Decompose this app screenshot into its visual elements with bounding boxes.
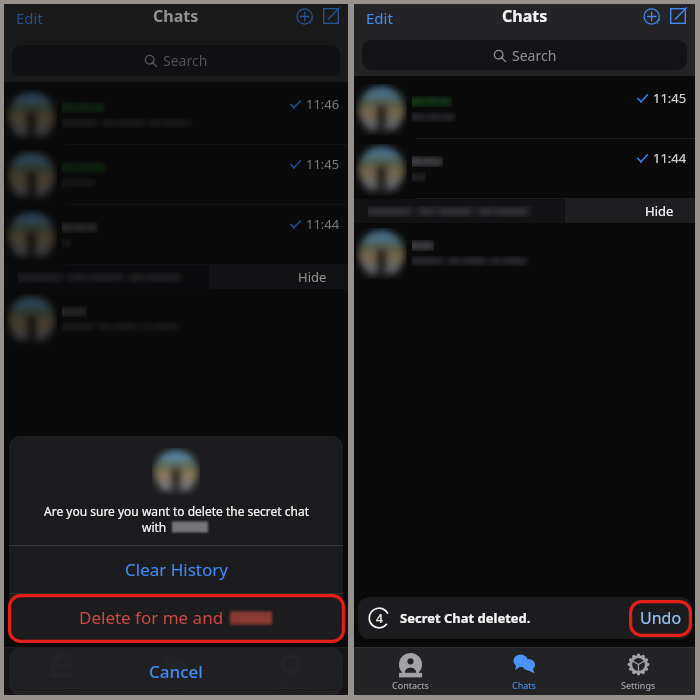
staticText: 4 [376,610,383,626]
button[interactable]: Cancel [9,648,343,695]
staticText: 11:46 [306,95,340,113]
button[interactable] [4,289,348,349]
staticText: Search [512,46,557,65]
staticText: Hide [645,202,674,220]
staticText: Contacts [392,679,429,691]
staticText: 11:45 [306,155,340,173]
staticText: Cancel [149,660,203,683]
button[interactable]: Search [362,40,687,70]
staticText: Hide [298,268,327,286]
staticText: Delete for me and [79,606,228,629]
staticText: 11:44 [653,149,687,167]
button[interactable]: Undo [632,601,690,635]
staticText: Chats [502,5,548,27]
button[interactable]: Delete for me and [9,594,343,641]
button[interactable]: 11:45 [354,79,695,139]
button[interactable]: Hide [276,265,348,289]
staticText: Edit [16,8,43,24]
staticText: Search [163,51,208,70]
button[interactable]: 11:46 [4,85,348,145]
button[interactable]: Hide [623,199,695,223]
staticText: with [142,519,170,535]
staticText: Are you sure you want to delete the secr… [44,503,309,519]
staticText: Edit [366,8,393,24]
button[interactable]: Add contact [293,4,317,28]
button[interactable]: Contacts [354,648,467,695]
staticText: 11:45 [653,89,687,107]
button[interactable]: Settings [581,648,695,695]
button[interactable]: 11:44 [4,205,348,265]
staticText: Settings [621,679,656,691]
button[interactable]: Compose message [319,4,343,28]
staticText: 11:44 [306,215,340,233]
staticText: Undo [640,607,682,629]
staticText: Chats [153,5,199,27]
button[interactable]: Chats [467,648,581,695]
button[interactable]: Edit [4,4,53,28]
button[interactable]: 11:44 [354,139,695,199]
button[interactable]: Add contact [640,4,664,28]
button[interactable] [354,223,695,283]
button[interactable]: 11:45 [4,145,348,205]
button[interactable]: Clear History [9,546,343,593]
button[interactable]: Edit [354,4,403,28]
button[interactable]: Compose message [666,4,690,28]
staticText: Chats [512,679,536,691]
staticText: Secret Chat deleted. [400,609,531,627]
button[interactable]: Search [12,45,340,76]
button[interactable]: Chats [118,648,233,695]
staticText: Clear History [125,558,228,581]
